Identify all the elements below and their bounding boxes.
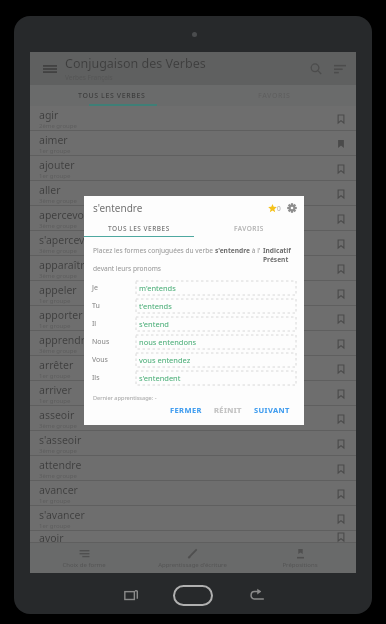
staticText: aimer — [39, 133, 68, 147]
button[interactable]: Favorite — [335, 438, 347, 450]
button[interactable]: Search — [306, 59, 326, 79]
button[interactable]: ajouter — [30, 156, 356, 181]
staticText: Vous — [92, 355, 108, 365]
button[interactable]: Favorite — [335, 238, 347, 250]
button[interactable]: avancer — [30, 481, 356, 506]
button[interactable]: Sort — [330, 59, 350, 79]
staticText: appeler — [39, 283, 77, 297]
button[interactable]: TOUS LES VERBES — [84, 220, 194, 237]
staticText: à l' — [250, 246, 263, 255]
staticText: s'apercevoir — [39, 233, 98, 247]
staticText: 3ème groupe — [39, 197, 77, 205]
button[interactable]: Favorite — [335, 163, 347, 175]
staticText: asseoir — [39, 408, 75, 422]
button[interactable]: aller — [30, 181, 356, 206]
staticText: 2ème groupe — [39, 122, 77, 130]
button[interactable]: Favorite — [335, 488, 347, 500]
button[interactable]: Favorite — [335, 138, 347, 150]
staticText: s'entendre — [93, 201, 143, 215]
staticText: RÉINIT — [214, 405, 242, 415]
button[interactable]: m'entends — [136, 281, 296, 295]
staticText: apercevoir — [39, 208, 91, 222]
button[interactable]: Favorite — [335, 463, 347, 475]
button[interactable]: agir — [30, 106, 356, 131]
staticText: arriver — [39, 383, 72, 397]
staticText: s'entend — [139, 319, 169, 329]
button[interactable]: avoir — [30, 531, 356, 543]
button[interactable]: asseoir — [30, 406, 356, 431]
staticText: Nous — [92, 337, 110, 347]
button[interactable]: Favorite — [335, 363, 347, 375]
button[interactable]: Favorite — [335, 288, 347, 300]
staticText: apparaître — [39, 258, 91, 272]
button[interactable]: apprendre — [30, 331, 356, 356]
staticText: nous entendons — [139, 337, 197, 347]
button[interactable]: Favorite — [335, 413, 347, 425]
staticText: s'asseoir — [39, 433, 82, 447]
button[interactable]: FAVORIS — [194, 220, 304, 237]
staticText: SUIVANT — [254, 405, 290, 415]
button[interactable]: RÉINIT — [208, 402, 248, 418]
button[interactable]: TOUS LES VERBES — [30, 85, 193, 106]
button[interactable]: arriver — [30, 381, 356, 406]
button[interactable]: Apprentissage d'écriture — [138, 543, 246, 573]
button[interactable]: aimer — [30, 131, 356, 156]
staticText: TOUS LES VERBES — [78, 91, 146, 101]
button[interactable]: Favorite — [335, 263, 347, 275]
button[interactable]: FERMER — [164, 402, 208, 418]
button[interactable]: s'entendent — [136, 371, 296, 385]
button[interactable]: Favorite — [335, 188, 347, 200]
button[interactable]: arrêter — [30, 356, 356, 381]
staticText: devant leurs pronoms — [93, 264, 161, 273]
button[interactable]: Favorite — [335, 113, 347, 125]
staticText: Je — [92, 283, 98, 293]
button[interactable]: s'asseoir — [30, 431, 356, 456]
staticText: 3ème groupe — [39, 447, 77, 455]
button[interactable]: Favorite — [335, 388, 347, 400]
button[interactable]: Favorite — [335, 213, 347, 225]
staticText: Dernier apprentissage: - — [93, 394, 157, 402]
button[interactable]: appeler — [30, 281, 356, 306]
button[interactable]: nous entendons — [136, 335, 296, 349]
button[interactable]: Favorite — [335, 513, 347, 525]
button[interactable]: Favorite count — [268, 204, 281, 213]
staticText: 1er groupe — [39, 497, 71, 505]
staticText: arrêter — [39, 358, 74, 372]
button[interactable]: s'entend — [136, 317, 296, 331]
button[interactable]: apporter — [30, 306, 356, 331]
button[interactable]: Back — [250, 588, 264, 602]
button[interactable]: vous entendez — [136, 353, 296, 367]
button[interactable]: s'avancer — [30, 506, 356, 531]
staticText: Tu — [92, 301, 100, 311]
staticText: 1er groupe — [39, 522, 71, 530]
staticText: ajouter — [39, 158, 75, 172]
button[interactable]: apparaître — [30, 256, 356, 281]
button[interactable]: Recents — [124, 588, 138, 602]
button[interactable]: Settings — [286, 202, 298, 214]
staticText: aller — [39, 183, 61, 197]
button[interactable]: Choix de forme — [30, 543, 138, 573]
staticText: apprendre — [39, 333, 91, 347]
button[interactable]: Favorite — [335, 313, 347, 325]
button[interactable]: t'entends — [136, 299, 296, 313]
staticText: Apprentissage d'écriture — [158, 561, 227, 569]
button[interactable]: Home — [174, 586, 212, 605]
button[interactable]: SUIVANT — [248, 402, 296, 418]
button[interactable]: attendre — [30, 456, 356, 481]
staticText: s'entendre — [215, 246, 250, 255]
staticText: Placez les formes conjuguées du verbe — [93, 246, 215, 255]
staticText: 1er groupe — [39, 297, 71, 305]
staticText: 3ème groupe — [39, 247, 77, 255]
button[interactable]: apercevoir — [30, 206, 356, 231]
staticText: s'avancer — [39, 508, 85, 522]
button[interactable]: Favorite — [335, 338, 347, 350]
staticText: Conjugaison des Verbes — [65, 55, 206, 72]
button[interactable]: Menu — [40, 59, 60, 79]
button[interactable]: s'apercevoir — [30, 231, 356, 256]
button[interactable]: Favorite — [335, 531, 347, 543]
staticText: 3ème groupe — [39, 347, 77, 355]
staticText: m'entends — [139, 283, 176, 293]
staticText: Ils — [92, 373, 100, 383]
